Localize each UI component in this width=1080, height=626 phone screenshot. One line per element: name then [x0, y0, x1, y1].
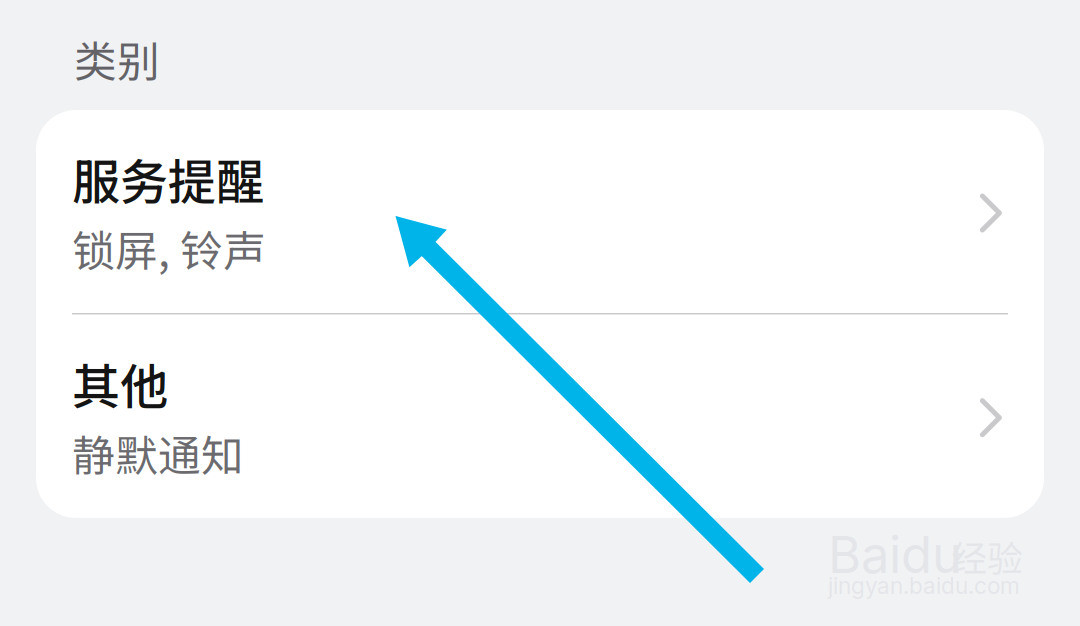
- staticText: 服务提醒: [72, 144, 264, 213]
- staticText: Baidu: [828, 524, 962, 585]
- staticText: jingyan.baidu.com: [828, 572, 1020, 599]
- staticText: 经验: [951, 530, 1023, 582]
- staticText: 锁屏, 铃声: [72, 217, 266, 279]
- button[interactable]: 服务提醒: [36, 110, 1044, 313]
- staticText: 类别: [74, 28, 160, 90]
- staticText: 其他: [72, 349, 168, 418]
- staticText: 静默通知: [72, 422, 244, 484]
- button[interactable]: 其他: [36, 314, 1044, 518]
